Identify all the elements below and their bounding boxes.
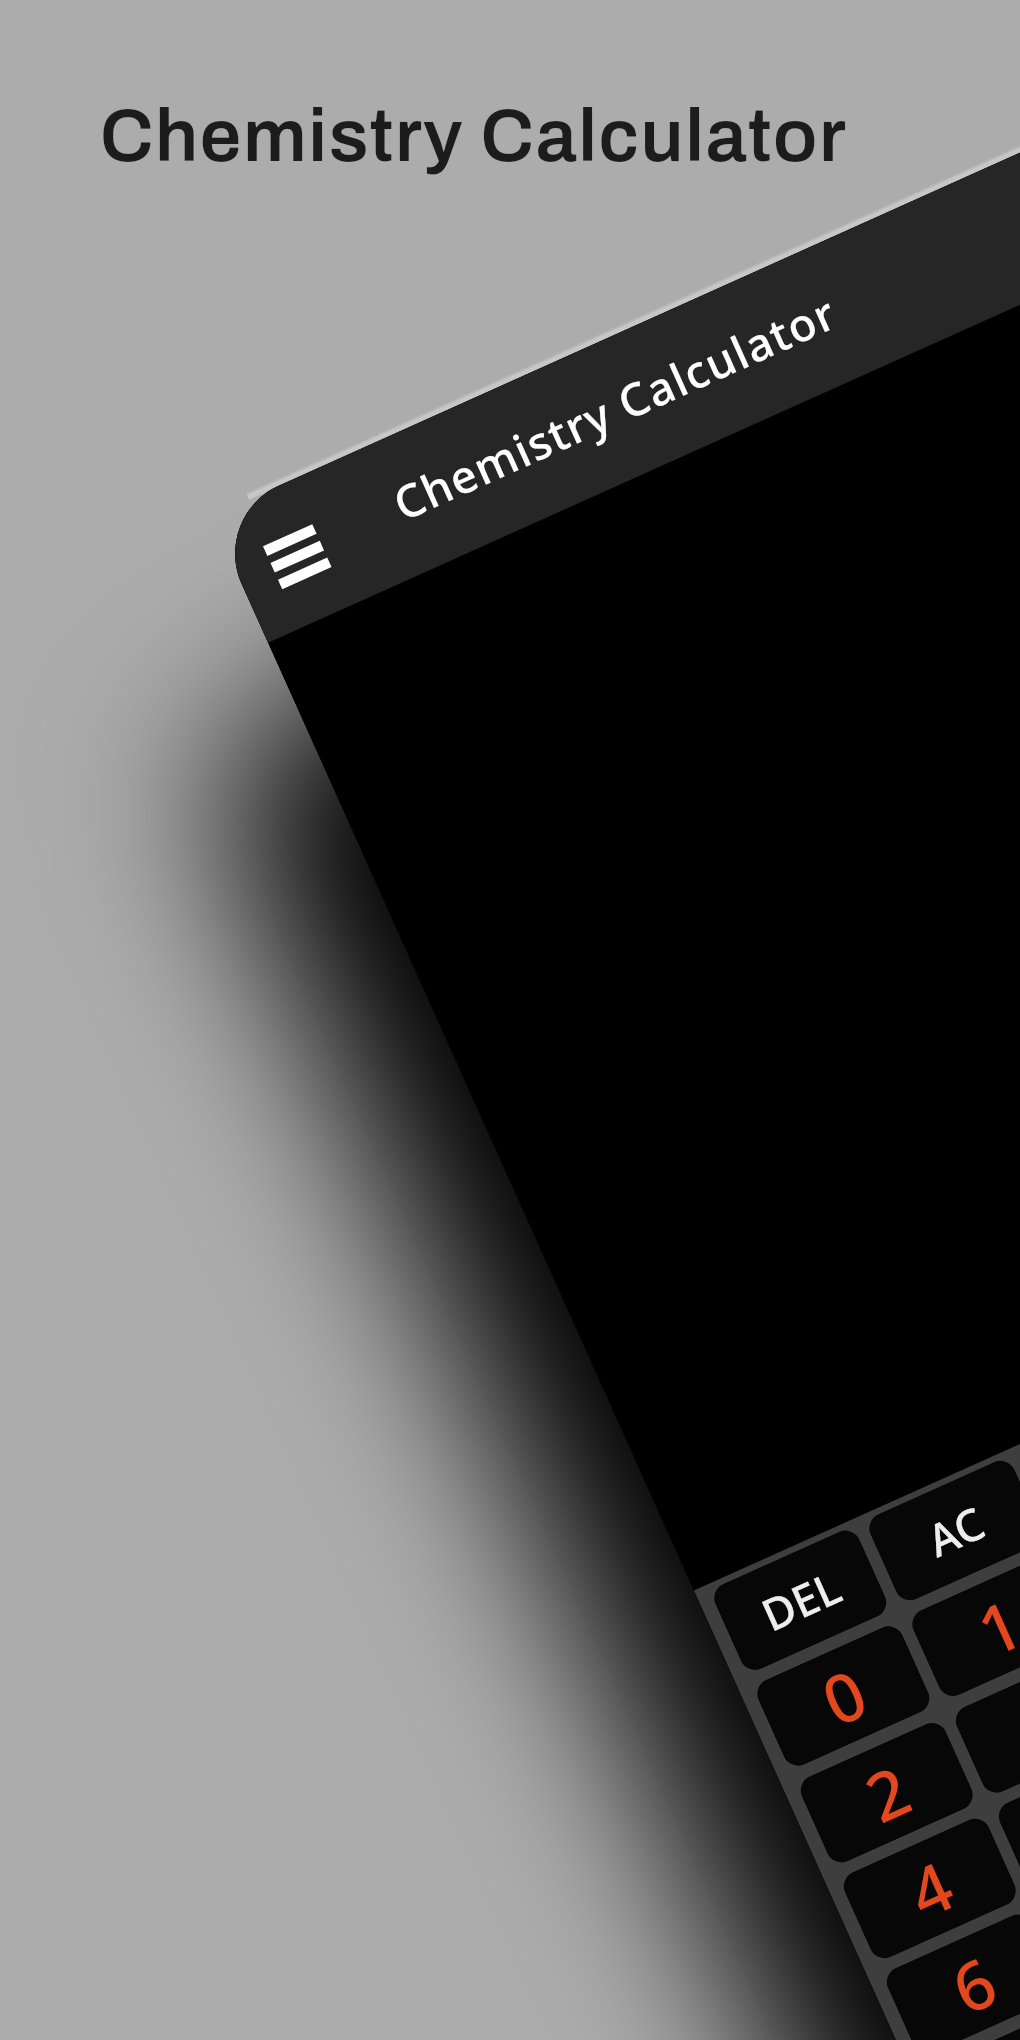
staticText: 6 [937, 1934, 1010, 2033]
staticText: 4 [894, 1839, 967, 1938]
staticText: Chemistry Calculator [384, 281, 846, 534]
staticText: 2 [851, 1743, 924, 1842]
button[interactable]: 8 [925, 2006, 1020, 2040]
button[interactable]: 2 [796, 1718, 978, 1867]
button[interactable]: 3 [951, 1648, 1020, 1798]
button[interactable]: 5 [994, 1744, 1020, 1894]
button[interactable]: DEL [709, 1525, 891, 1675]
staticText: DEL [752, 1556, 850, 1644]
button[interactable]: 1 [907, 1551, 1020, 1701]
button[interactable]: 0 [752, 1621, 934, 1771]
staticText: 0 [807, 1646, 880, 1745]
button[interactable]: Open navigation menu [252, 511, 342, 601]
button[interactable]: 6 [882, 1909, 1020, 2040]
staticText: 8 [980, 2031, 1020, 2040]
button[interactable]: AC [864, 1456, 1020, 1605]
staticText: AC [918, 1492, 993, 1570]
button[interactable]: 4 [839, 1814, 1020, 1963]
staticText: 3 [1006, 1673, 1020, 1772]
staticText: 1 [962, 1577, 1020, 1676]
button[interactable]: ( [1019, 1386, 1020, 1536]
staticText: Chemistry Calculator [100, 96, 848, 177]
